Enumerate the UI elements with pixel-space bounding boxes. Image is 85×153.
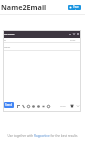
staticText: New Message (4, 33, 15, 35)
staticText: Name2Email (1, 2, 47, 12)
staticText: Saved (60, 105, 68, 108)
staticText: Cc Bcc (70, 39, 76, 41)
button[interactable]: Attach files (22, 105, 25, 108)
button[interactable]: Minimize (69, 33, 71, 35)
staticText: Tweet (73, 5, 80, 10)
staticText: Subject (4, 46, 11, 48)
button[interactable]: Confidential mode (47, 105, 50, 108)
button[interactable]: Insert from Drive (37, 105, 40, 108)
button[interactable]: Insert photo (42, 105, 45, 108)
button[interactable]: More options (76, 104, 80, 108)
button[interactable]: Insert link (27, 105, 30, 108)
staticText: Use together with Rapportive for the bes… (0, 134, 85, 138)
button[interactable]: Insert emoji (32, 105, 35, 108)
button[interactable]: Tweet (68, 5, 81, 10)
staticText: Send (5, 103, 13, 107)
button[interactable]: Send (4, 102, 14, 108)
staticText: To (4, 39, 6, 41)
button[interactable]: Discard draft (70, 104, 74, 108)
button[interactable]: Formatting options (17, 105, 20, 108)
